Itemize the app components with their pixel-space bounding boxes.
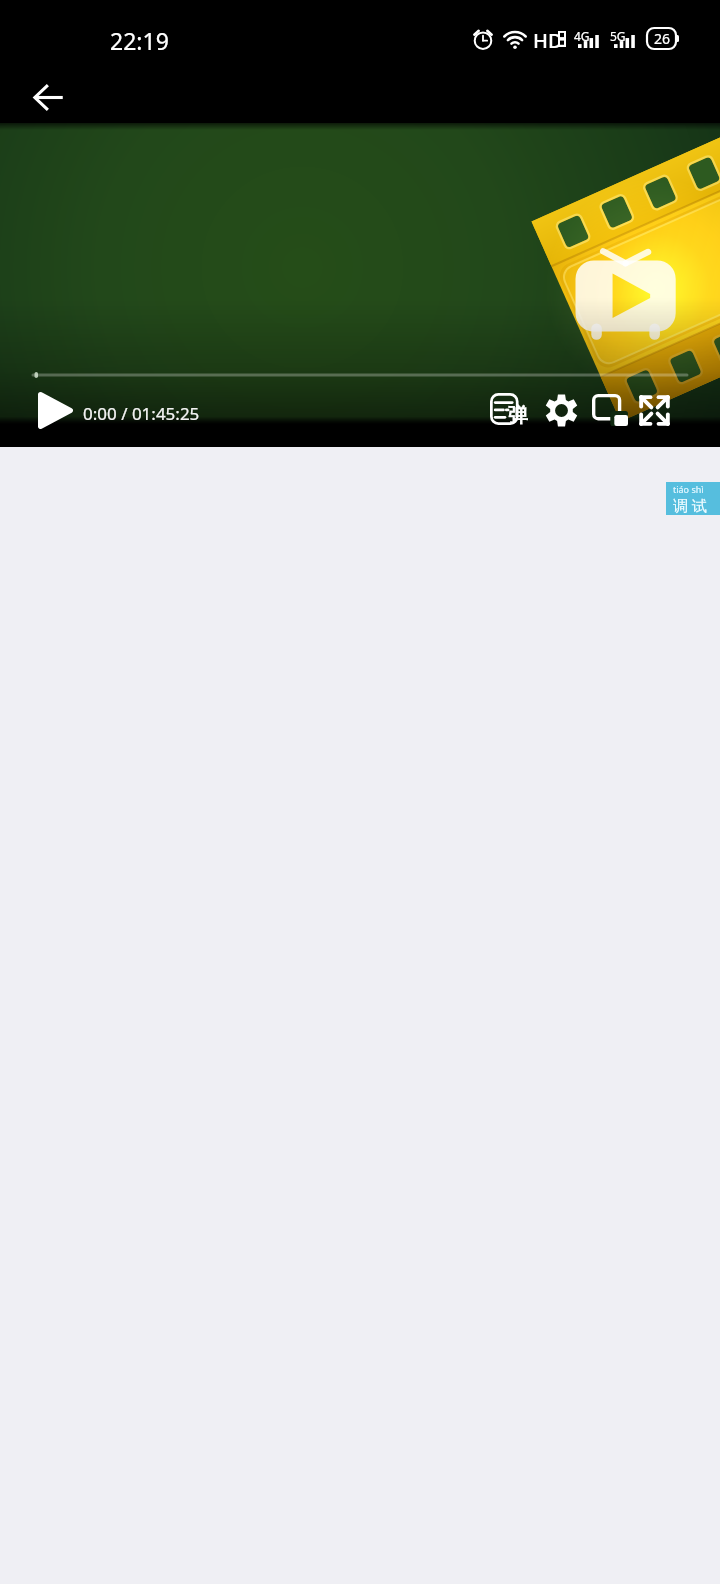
staticText: 4G — [574, 28, 590, 44]
staticText: 5G — [610, 28, 626, 44]
button[interactable]: Settings — [537, 386, 585, 434]
staticText: 22:19 — [110, 25, 169, 56]
button[interactable]: Picture in picture — [586, 386, 634, 434]
button[interactable]: Danmaku — [487, 386, 535, 434]
staticText: 26 — [654, 29, 671, 48]
staticText: tiáo shì — [673, 483, 704, 495]
staticText: 弹 — [508, 403, 528, 428]
button[interactable]: tiáo shì — [666, 482, 720, 515]
button[interactable]: Play — [31, 386, 79, 434]
staticText: 0:00 / 01:45:25 — [83, 402, 200, 425]
button[interactable]: Fullscreen — [630, 386, 678, 434]
button[interactable]: Back — [20, 69, 76, 125]
staticText: 调 试 — [673, 495, 707, 515]
staticText: HD — [533, 27, 563, 54]
